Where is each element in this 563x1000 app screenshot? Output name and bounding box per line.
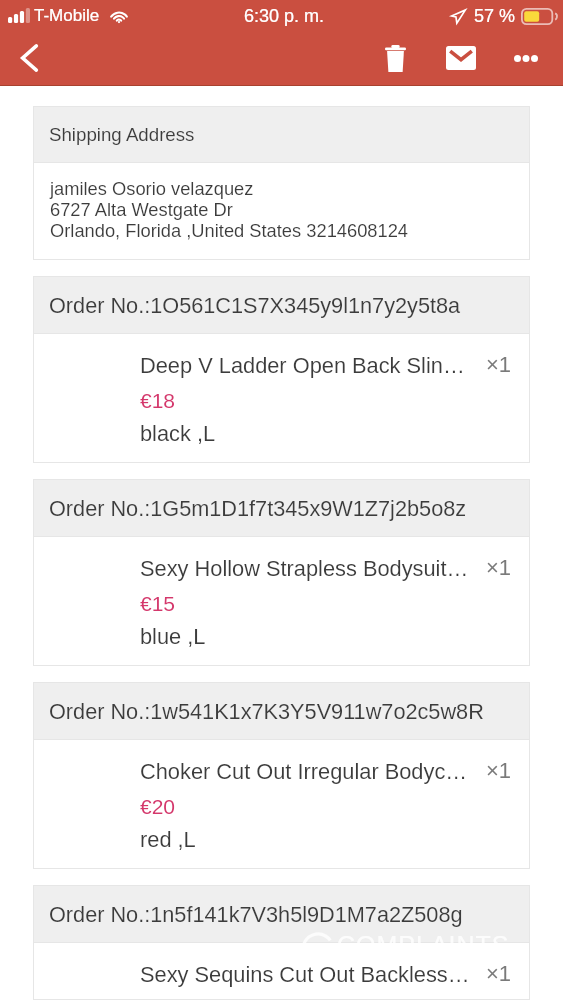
staticText: black ,L (140, 421, 216, 445)
staticText: €18 (140, 389, 176, 421)
staticText: Shipping Address (49, 124, 195, 145)
staticText: 6:30 p. m. (244, 6, 325, 26)
button[interactable]: Delete (363, 31, 428, 85)
button[interactable]: Mail (428, 31, 493, 85)
staticText: Order No.:1n5f141k7V3h5l9D1M7a2Z508g (49, 902, 463, 926)
button[interactable]: Order No.:1w541K1x7K3Y5V911w7o2c5w8R (33, 682, 530, 869)
staticText: Sexy Sequins Cut Out Backless… (140, 962, 470, 998)
staticText: Deep V Ladder Open Back Slin… (140, 353, 465, 389)
staticText: ×1 (486, 758, 512, 783)
staticText: ×1 (486, 961, 512, 986)
staticText: Choker Cut Out Irregular Bodyc… (140, 759, 468, 795)
staticText: red ,L (140, 827, 196, 851)
staticText: Sexy Hollow Strapless Bodysuit… (140, 556, 469, 592)
staticText: €20 (140, 795, 176, 827)
staticText: 57 % (474, 6, 516, 26)
staticText: Order No.:1G5m1D1f7t345x9W1Z7j2b5o8z (49, 496, 467, 520)
staticText: ×1 (486, 555, 512, 580)
staticText: €12 (140, 998, 176, 1000)
staticText: ×1 (486, 352, 512, 377)
button[interactable]: Back (0, 31, 58, 85)
staticText: jamiles Osorio velazquez (50, 178, 254, 199)
staticText: 6727 Alta Westgate Dr (50, 199, 233, 220)
staticText: blue ,L (140, 624, 206, 648)
button[interactable]: Order No.:1n5f141k7V3h5l9D1M7a2Z508g (33, 885, 530, 1000)
button[interactable]: More options (493, 31, 558, 85)
staticText: Order No.:1O561C1S7X345y9l1n7y2y5t8a (49, 293, 461, 317)
staticText: Orlando, Florida ,United States 32146081… (50, 220, 409, 241)
staticText: COMPLAINTS (337, 931, 510, 959)
button[interactable]: Order No.:1G5m1D1f7t345x9W1Z7j2b5o8z (33, 479, 530, 666)
staticText: €15 (140, 592, 176, 624)
button[interactable]: Order No.:1O561C1S7X345y9l1n7y2y5t8a (33, 276, 530, 463)
staticText: T-Mobile (34, 6, 100, 25)
staticText: Order No.:1w541K1x7K3Y5V911w7o2c5w8R (49, 699, 484, 723)
